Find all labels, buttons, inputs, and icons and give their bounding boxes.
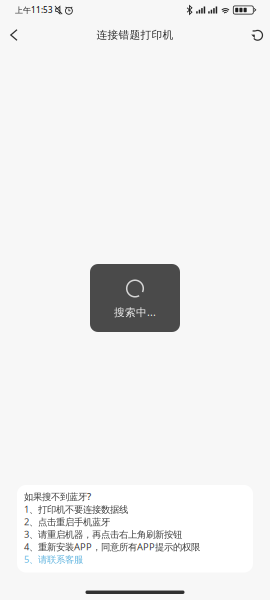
staticText: 搜索中... — [114, 305, 156, 319]
staticText: 上午11:53 — [15, 5, 53, 15]
staticText: 2、点击重启手机蓝牙 — [24, 516, 110, 528]
staticText: 5、请联系客服 — [24, 553, 83, 565]
staticText: 4、重新安装APP，同意所有APP提示的权限 — [24, 541, 200, 553]
button[interactable]: Back — [0, 20, 29, 50]
staticText: 1、打印机不要连接数据线 — [24, 503, 128, 515]
button[interactable]: Refresh — [242, 20, 270, 50]
staticText: 连接错题打印机 — [96, 28, 173, 41]
staticText: 如果搜不到蓝牙? — [24, 490, 91, 503]
staticText: 3、请重启机器，再点击右上角刷新按钮 — [24, 528, 182, 540]
